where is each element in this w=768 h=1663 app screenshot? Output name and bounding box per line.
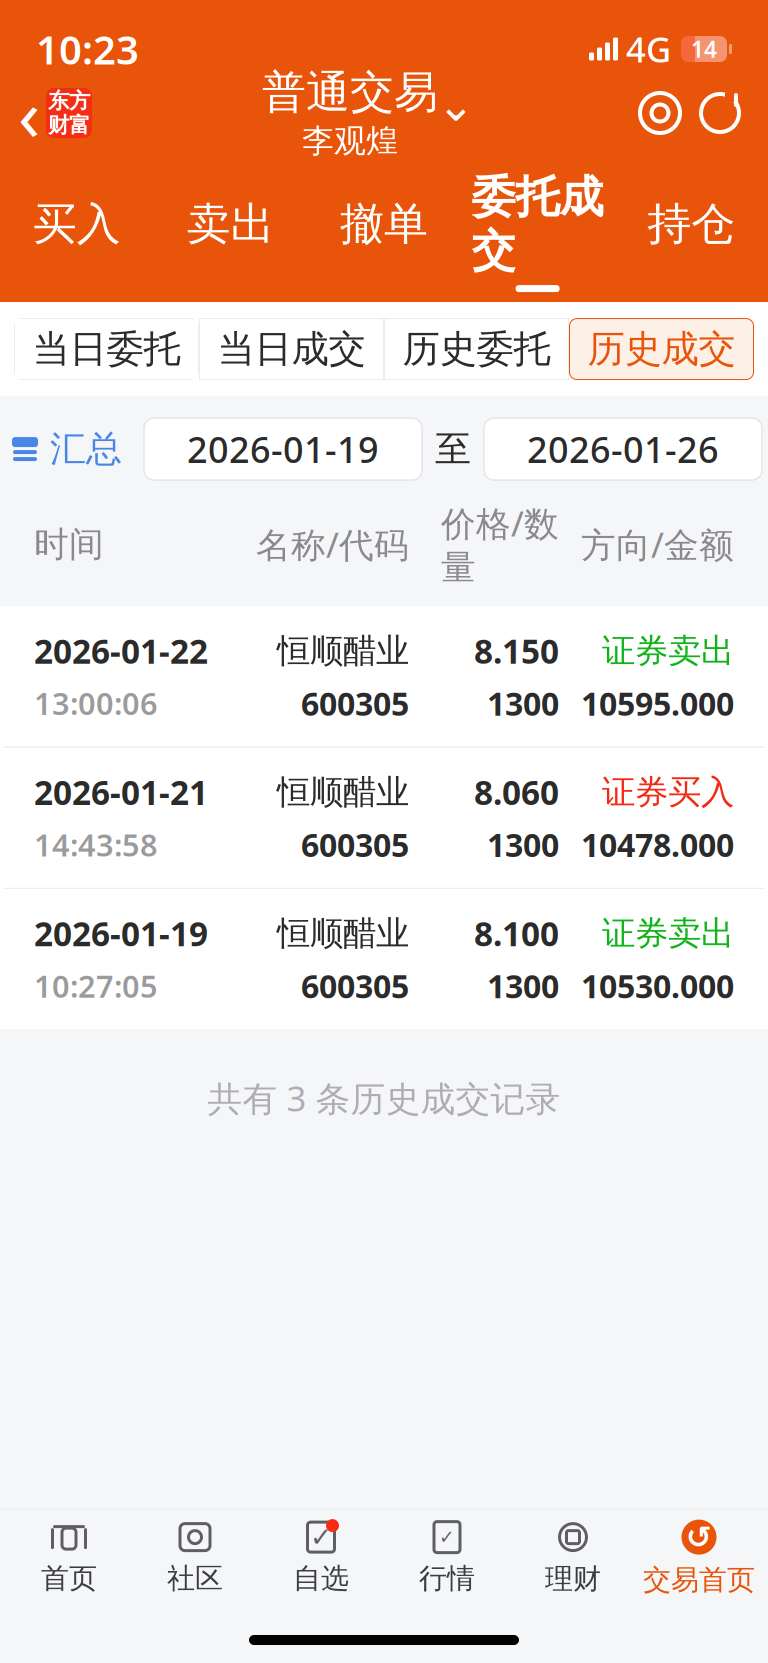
staticText: 证券卖出 bbox=[602, 630, 734, 671]
staticText: 当日委托 bbox=[32, 326, 180, 372]
button[interactable]: 返回 bbox=[0, 86, 100, 140]
staticText: 名称/代码 bbox=[256, 521, 409, 567]
staticText: 当日成交 bbox=[217, 326, 365, 372]
staticText: 8.100 bbox=[474, 911, 559, 955]
button[interactable]: 2026-01-19 bbox=[0, 889, 768, 1029]
button[interactable]: 2026-01-26 bbox=[484, 418, 762, 480]
button[interactable]: 理财 bbox=[510, 1511, 636, 1602]
staticText: 卖出 bbox=[186, 197, 274, 251]
staticText: 价格/数量 bbox=[441, 500, 559, 589]
staticText: 10:23 bbox=[36, 22, 139, 75]
staticText: 汇总 bbox=[50, 427, 122, 471]
staticText: 14 bbox=[691, 34, 717, 64]
staticText: 方向/金额 bbox=[581, 521, 734, 567]
button[interactable]: 普通交易 bbox=[262, 65, 474, 161]
staticText: 1300 bbox=[487, 964, 559, 1007]
staticText: 10595.000 bbox=[581, 682, 734, 724]
staticText: 理财 bbox=[545, 1562, 601, 1596]
button[interactable]: 当日成交 bbox=[199, 318, 384, 380]
staticText: 证券买入 bbox=[602, 772, 734, 812]
staticText: 恒顺醋业 bbox=[277, 630, 409, 671]
staticText: 600305 bbox=[301, 964, 409, 1007]
button[interactable]: 设置 bbox=[636, 89, 684, 137]
button[interactable]: 买入 bbox=[0, 191, 154, 271]
button[interactable]: 汇总 bbox=[10, 427, 122, 471]
staticText: 普通交易 bbox=[262, 65, 438, 119]
staticText: ✓ bbox=[310, 1522, 332, 1552]
button[interactable]: 社区 bbox=[132, 1511, 258, 1601]
button[interactable]: 撤单 bbox=[307, 191, 461, 271]
staticText: 时间 bbox=[34, 523, 104, 566]
staticText: ⌄ bbox=[437, 79, 475, 131]
staticText: 撤单 bbox=[340, 197, 428, 251]
staticText: 李观煌 bbox=[302, 121, 398, 161]
staticText: 持仓 bbox=[647, 197, 735, 251]
button[interactable]: 2026-01-22 bbox=[0, 607, 768, 746]
staticText: 2026-01-26 bbox=[527, 425, 719, 473]
button[interactable]: 首页 bbox=[6, 1511, 132, 1601]
staticText: 委托成交 bbox=[472, 170, 604, 278]
staticText: 600305 bbox=[301, 823, 409, 866]
staticText: 1300 bbox=[487, 823, 559, 866]
button[interactable]: 当日委托 bbox=[14, 318, 199, 380]
staticText: ‹ bbox=[18, 65, 40, 161]
button[interactable]: 历史委托 bbox=[384, 318, 569, 380]
button[interactable]: ✓ bbox=[384, 1511, 510, 1601]
button[interactable]: ↺ bbox=[636, 1510, 762, 1603]
staticText: 600305 bbox=[301, 682, 409, 724]
staticText: 2026-01-21 bbox=[34, 770, 208, 814]
staticText: 4G bbox=[626, 26, 671, 72]
button[interactable]: 刷新 bbox=[684, 89, 744, 137]
staticText: 东方 bbox=[48, 88, 90, 114]
staticText: 1300 bbox=[487, 682, 559, 724]
button[interactable]: 委托成交 bbox=[461, 164, 614, 298]
staticText: 历史委托 bbox=[402, 326, 550, 372]
staticText: 恒顺醋业 bbox=[277, 913, 409, 954]
staticText: 2026-01-19 bbox=[187, 425, 379, 473]
staticText: 至 bbox=[435, 427, 471, 471]
staticText: 恒顺醋业 bbox=[277, 772, 409, 812]
button[interactable]: ✓ bbox=[258, 1511, 384, 1601]
button[interactable]: 卖出 bbox=[154, 191, 307, 271]
staticText: 社区 bbox=[167, 1561, 223, 1595]
button[interactable]: 持仓 bbox=[614, 191, 768, 271]
staticText: 10478.000 bbox=[581, 823, 734, 866]
staticText: 10530.000 bbox=[581, 964, 734, 1007]
staticText: 证券卖出 bbox=[602, 913, 734, 954]
staticText: 8.060 bbox=[474, 770, 559, 814]
staticText: ✓ bbox=[439, 1526, 455, 1548]
staticText: 财富 bbox=[48, 112, 90, 138]
staticText: 8.150 bbox=[474, 629, 559, 673]
staticText: ↺ bbox=[686, 1520, 712, 1554]
staticText: 2026-01-19 bbox=[34, 911, 208, 955]
staticText: 自选 bbox=[293, 1561, 349, 1595]
staticText: 14:43:58 bbox=[34, 824, 158, 865]
button[interactable]: 历史成交 bbox=[569, 318, 754, 380]
staticText: 首页 bbox=[41, 1561, 97, 1595]
staticText: 2026-01-22 bbox=[34, 629, 208, 673]
staticText: 买入 bbox=[33, 197, 121, 251]
staticText: 行情 bbox=[419, 1561, 475, 1595]
button[interactable]: 2026-01-21 bbox=[0, 748, 768, 888]
staticText: 历史成交 bbox=[587, 326, 735, 372]
staticText: 10:27:05 bbox=[34, 965, 158, 1006]
staticText: 交易首页 bbox=[643, 1563, 755, 1597]
button[interactable]: 2026-01-19 bbox=[144, 418, 422, 480]
staticText: 共有 3 条历史成交记录 bbox=[207, 1075, 560, 1121]
staticText: 13:00:06 bbox=[34, 683, 158, 724]
